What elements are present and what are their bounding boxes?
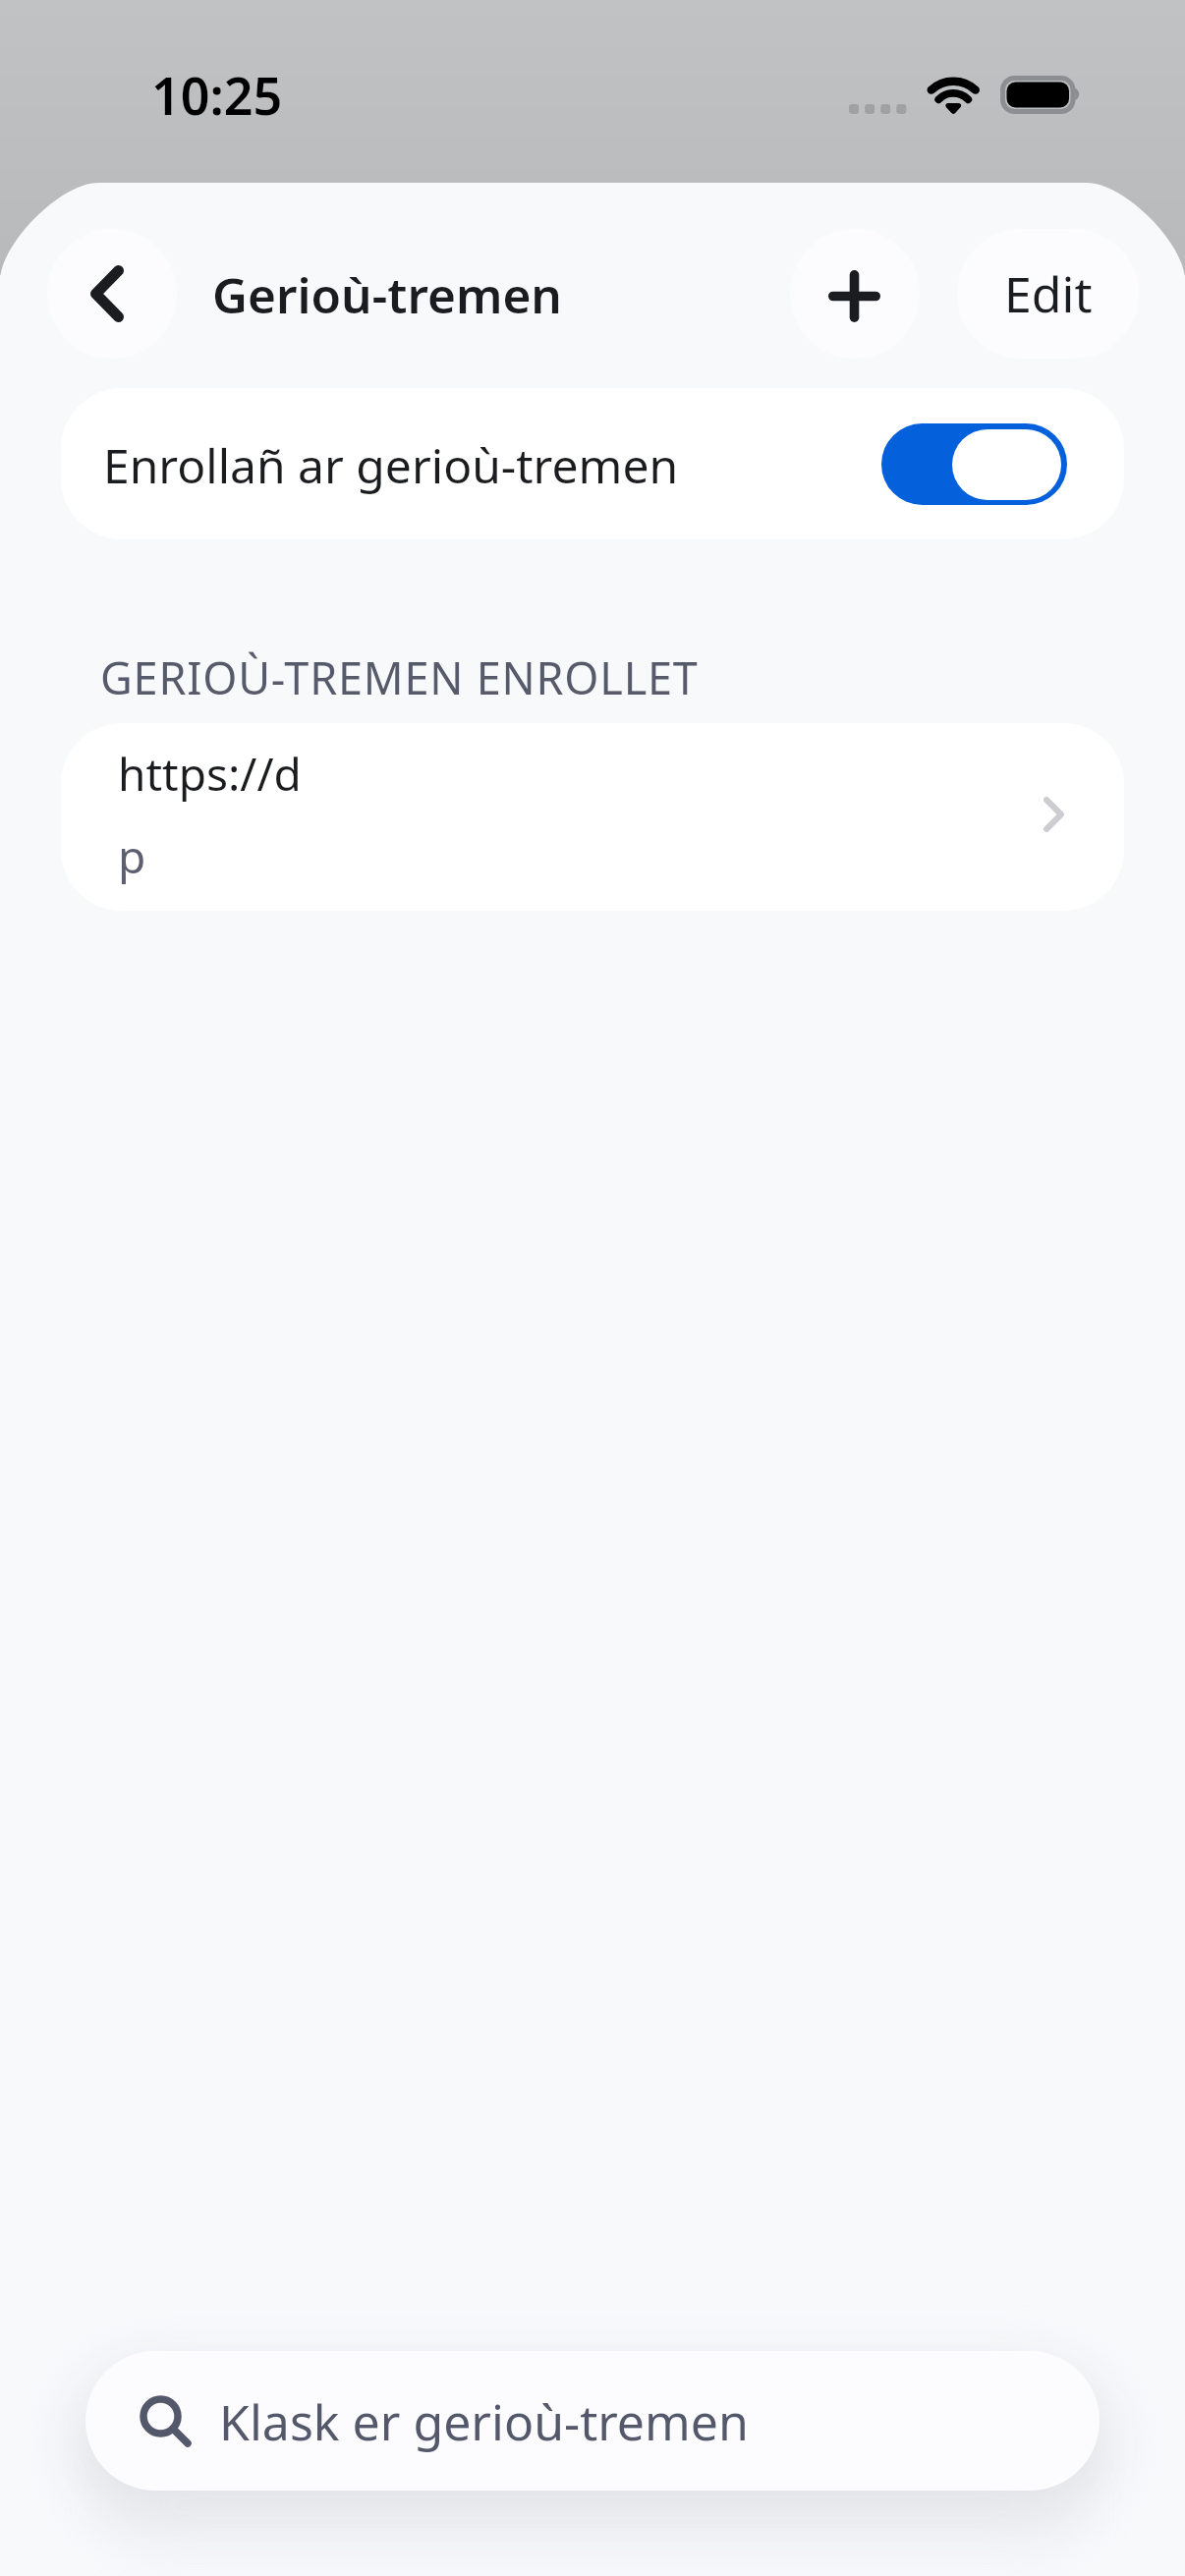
button[interactable]: Edit (957, 229, 1139, 359)
button[interactable]: https://d (61, 723, 1124, 911)
button[interactable]: Save passwords (881, 423, 1067, 505)
button[interactable]: Add password (790, 229, 920, 359)
button[interactable]: Enrollañ ar gerioù-tremen (61, 388, 1124, 539)
staticText: Gerioù-tremen (212, 261, 562, 327)
staticText: p (118, 825, 146, 887)
button[interactable]: Back (47, 229, 177, 359)
staticText: https://d (118, 743, 302, 805)
staticText: GERIOÙ-TREMEN ENROLLET (100, 647, 699, 707)
button[interactable]: Klask er gerioù-tremen (85, 2351, 1100, 2491)
staticText: 10:25 (151, 60, 283, 130)
staticText: Edit (1004, 260, 1093, 327)
staticText: Klask er gerioù-tremen (219, 2388, 749, 2455)
staticText: Enrollañ ar gerioù-tremen (103, 433, 679, 497)
